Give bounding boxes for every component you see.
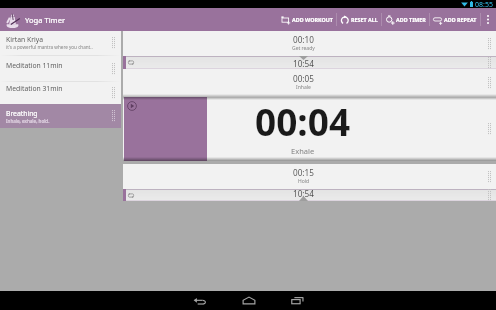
button[interactable]: Recent apps bbox=[273, 291, 322, 310]
staticText: Breathing bbox=[6, 109, 38, 118]
staticText: ADD WORKOUT bbox=[292, 16, 333, 23]
button[interactable]: Meditation 11min bbox=[0, 56, 121, 81]
staticText: Meditation 11min bbox=[6, 61, 63, 70]
staticText: Exhale bbox=[291, 146, 315, 156]
staticText: 00:04 bbox=[255, 96, 351, 146]
button[interactable]: ADD REPEAT bbox=[430, 8, 480, 31]
staticText: ADD TIMER bbox=[396, 16, 426, 23]
button[interactable]: 00:05 bbox=[123, 69, 496, 97]
staticText: it's a powerful mantra where you chant.. bbox=[6, 44, 93, 50]
button[interactable]: 00:10 bbox=[123, 31, 496, 56]
staticText: Inhale, exhale, hold. bbox=[6, 118, 50, 124]
button[interactable]: 10:54 bbox=[123, 56, 496, 69]
button[interactable]: 10:54 bbox=[123, 189, 496, 201]
button[interactable]: 00:15 bbox=[123, 164, 496, 189]
staticText: RESET ALL bbox=[351, 16, 378, 23]
button[interactable]: 00:04 bbox=[123, 97, 496, 161]
staticText: ADD REPEAT bbox=[444, 16, 477, 23]
staticText: 08:55 bbox=[475, 0, 493, 8]
button[interactable]: Back bbox=[175, 291, 224, 310]
staticText: Meditation 31min bbox=[6, 84, 63, 93]
button[interactable]: Kirtan Kriya bbox=[0, 31, 121, 55]
button[interactable]: Breathing bbox=[0, 104, 121, 128]
staticText: 00:05 bbox=[293, 73, 314, 84]
staticText: Inhale bbox=[296, 84, 311, 91]
staticText: 00:15 bbox=[293, 167, 314, 178]
staticText: 00:10 bbox=[293, 34, 314, 45]
staticText: Yoga Timer bbox=[25, 15, 66, 25]
staticText: Kirtan Kriya bbox=[6, 35, 44, 44]
button[interactable]: Meditation 31min bbox=[0, 82, 121, 104]
button[interactable]: Home bbox=[224, 291, 273, 310]
button[interactable]: ADD WORKOUT bbox=[278, 8, 336, 31]
button[interactable]: ADD TIMER bbox=[382, 8, 429, 31]
button[interactable]: More options bbox=[481, 8, 495, 31]
staticText: 10:54 bbox=[293, 58, 314, 69]
staticText: Hold bbox=[298, 178, 310, 185]
staticText: Get ready bbox=[292, 45, 315, 52]
button[interactable]: RESET ALL bbox=[337, 8, 381, 31]
staticText: 10:54 bbox=[293, 188, 314, 199]
